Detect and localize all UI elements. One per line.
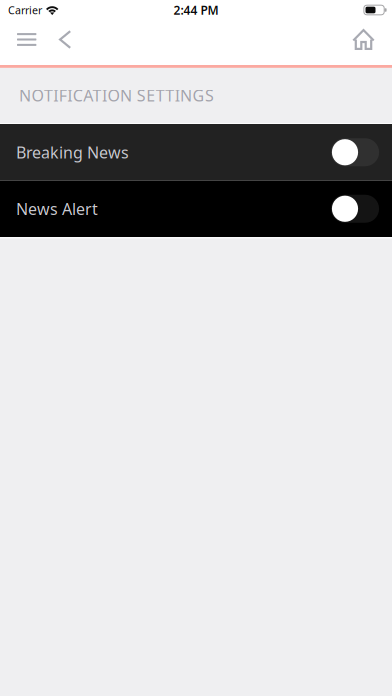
toggle[interactable]: Breaking News bbox=[331, 138, 379, 166]
button[interactable]: News Alert bbox=[0, 180, 392, 237]
staticText: Carrier bbox=[8, 3, 42, 17]
button[interactable]: Breaking News bbox=[0, 124, 392, 180]
toggle[interactable]: News Alert bbox=[331, 195, 379, 223]
button[interactable]: Home bbox=[343, 20, 384, 59]
button[interactable]: Menu bbox=[17, 20, 59, 59]
button[interactable]: Back bbox=[59, 20, 87, 59]
staticText: Breaking News bbox=[16, 142, 129, 163]
staticText: 2:44 PM bbox=[173, 2, 218, 18]
staticText: NOTIFICATION SETTINGS bbox=[19, 85, 214, 106]
staticText: News Alert bbox=[16, 198, 98, 219]
